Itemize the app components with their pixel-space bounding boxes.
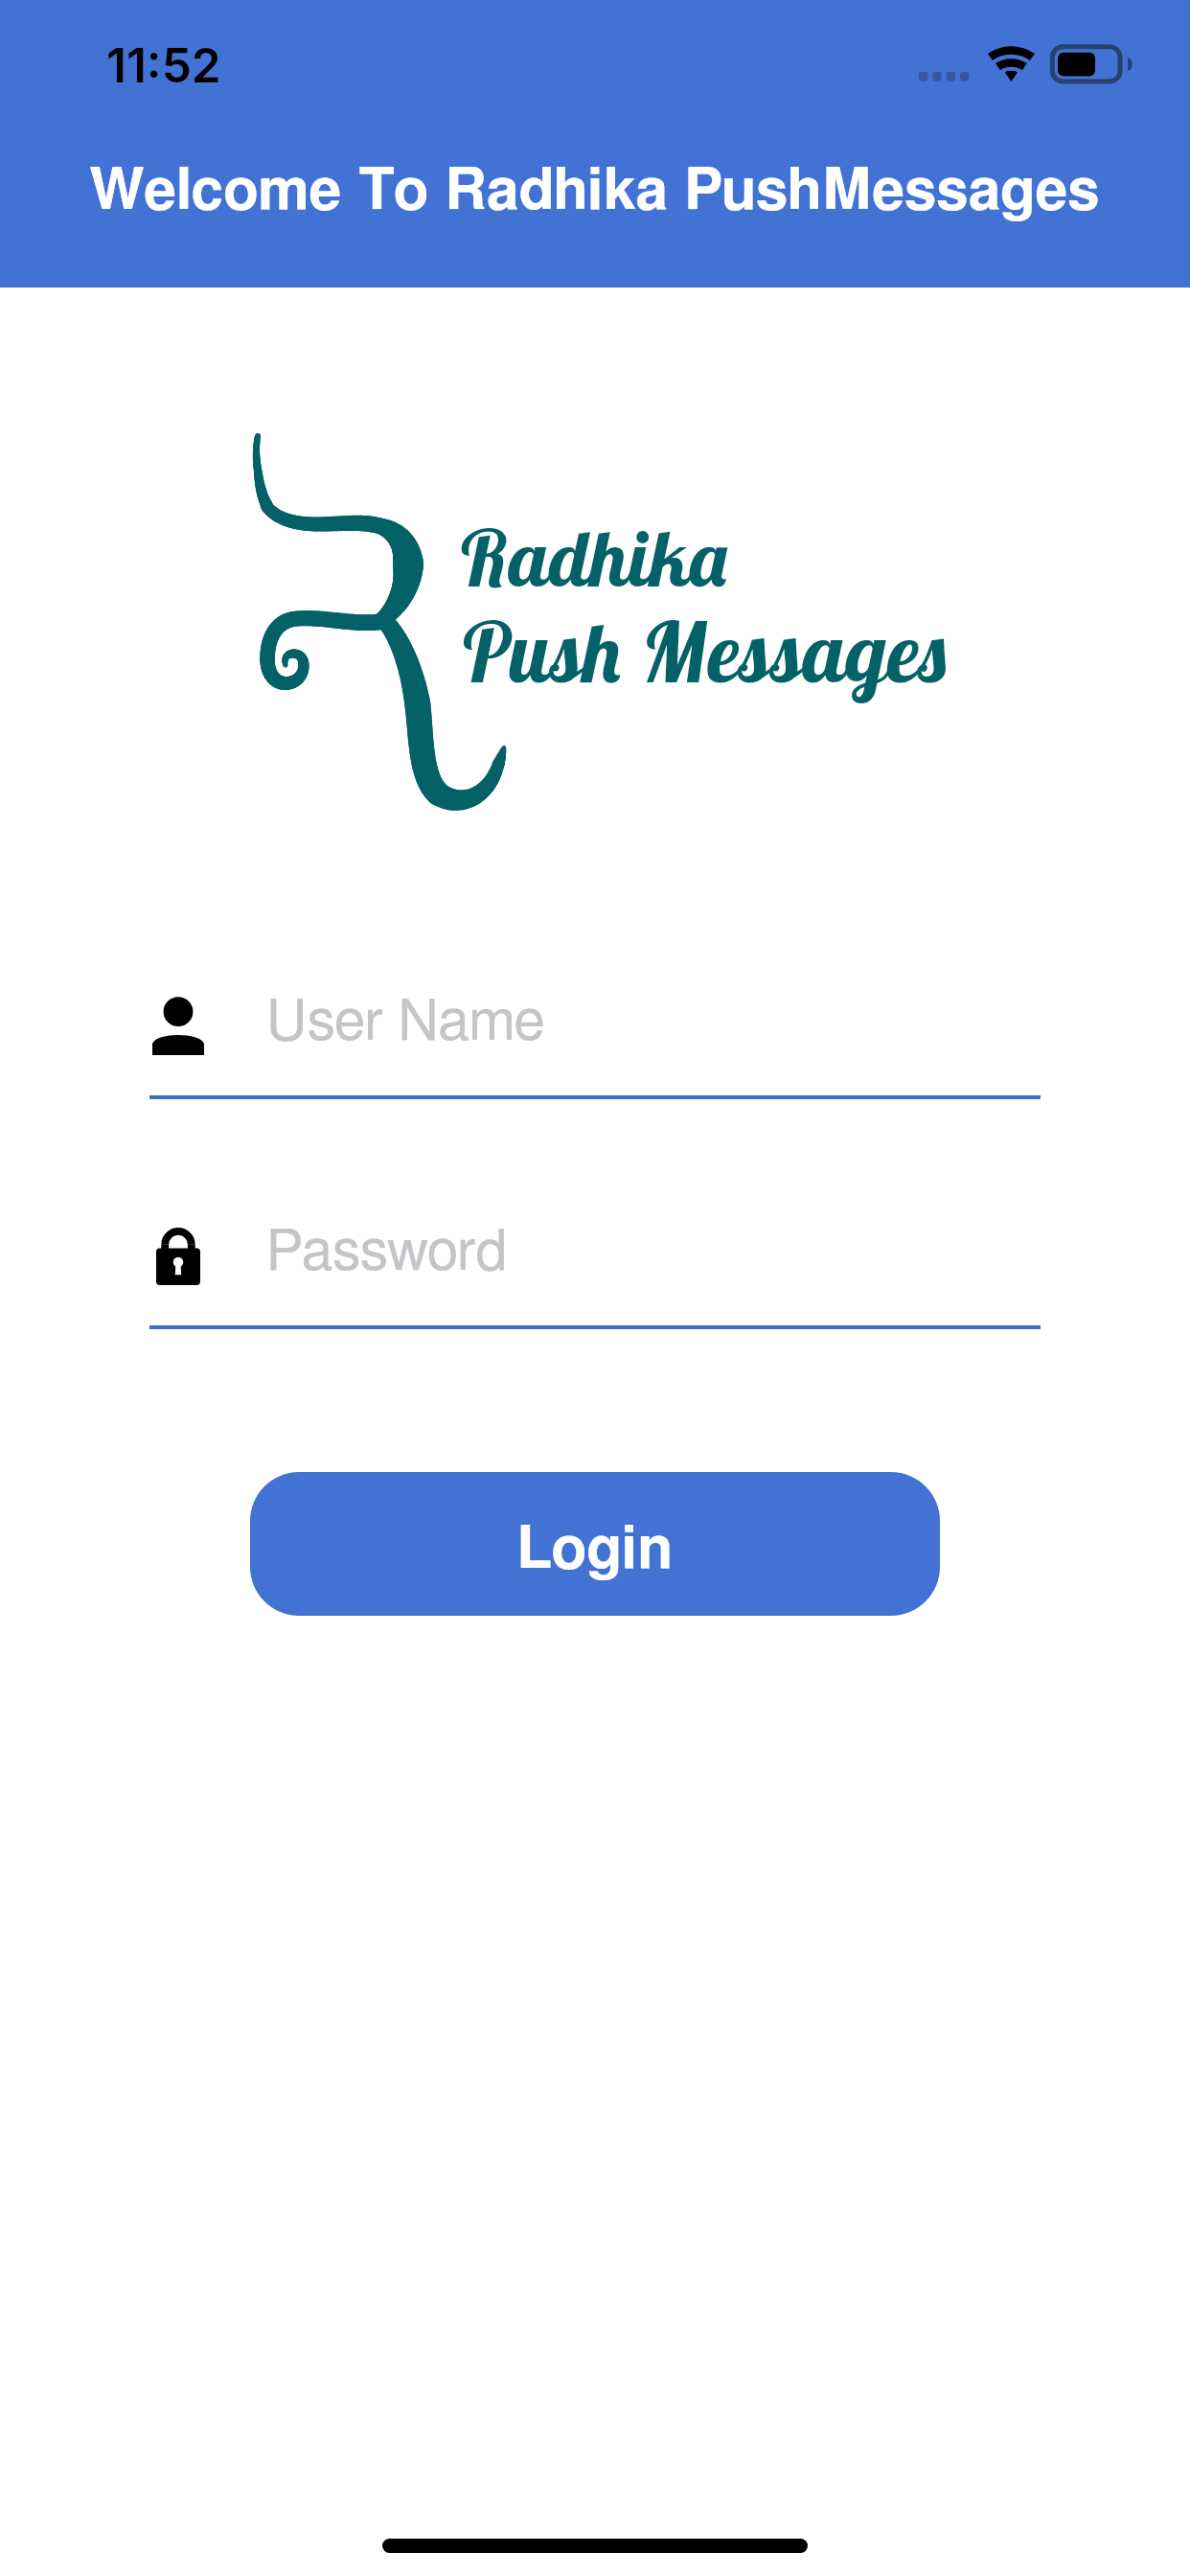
staticText: Password	[266, 1225, 508, 1281]
staticText: Welcome To Radhika PushMessages	[89, 163, 1100, 221]
staticText: Login	[516, 1521, 674, 1579]
staticText: User Name	[266, 995, 545, 1051]
button[interactable]: Password	[149, 1193, 1041, 1329]
staticText: 11:52	[106, 36, 221, 94]
staticText: Radhika	[457, 509, 731, 606]
button[interactable]: Login	[250, 1472, 940, 1616]
button[interactable]: User Name	[149, 963, 1041, 1099]
other: Status icons	[910, 43, 1140, 86]
staticText: Push Messages	[459, 600, 951, 703]
